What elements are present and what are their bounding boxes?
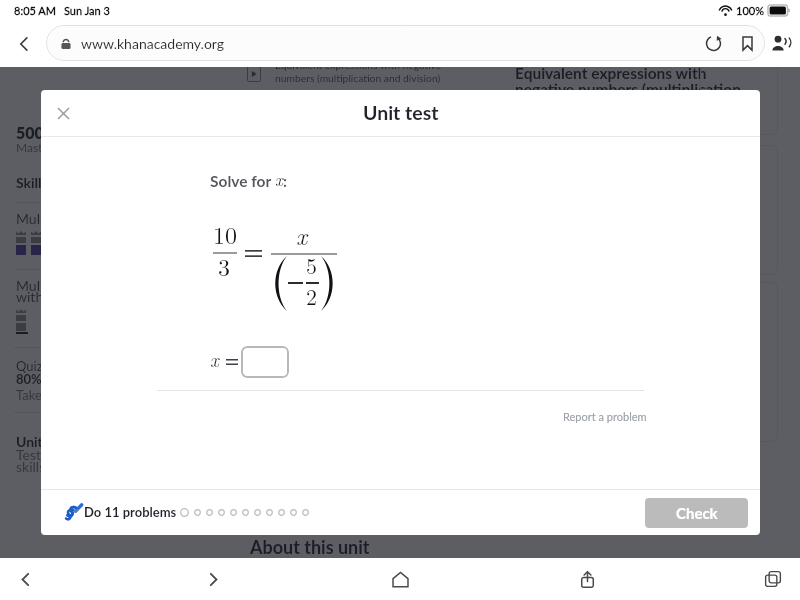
staticText: x — [296, 218, 308, 252]
button[interactable]: Back — [3, 558, 47, 600]
staticText: skills — [16, 458, 46, 475]
button[interactable]: Share page — [763, 27, 797, 61]
button[interactable]: Forward — [191, 558, 235, 600]
staticText: x — [210, 346, 219, 373]
staticText: 3 — [218, 249, 230, 283]
staticText: negative numbers (multiplication — [515, 80, 741, 99]
button[interactable]: Share — [565, 558, 609, 600]
staticText: Sun Jan 3 — [64, 4, 110, 17]
staticText: Mastery points — [16, 140, 95, 154]
staticText: Equivalent expressions with — [515, 67, 707, 83]
button[interactable]: Do 11 problems — [65, 501, 177, 523]
button[interactable]: Tabs — [751, 558, 795, 600]
button[interactable]: Close — [47, 97, 79, 129]
staticText: About this unit — [250, 536, 370, 558]
button[interactable]: Reload — [699, 29, 727, 57]
staticText: 5 — [306, 249, 318, 280]
staticText: 2 — [306, 280, 318, 311]
staticText: Solve for — [210, 172, 275, 191]
staticText: 100% — [736, 4, 764, 17]
staticText: Skill — [16, 174, 42, 191]
staticText: : — [283, 172, 287, 191]
button[interactable]: Back — [4, 24, 44, 64]
staticText: Multiplying — [16, 210, 86, 227]
button[interactable]: Report a problem — [563, 410, 647, 423]
staticText: numbers (multiplication and division) — [275, 72, 441, 84]
staticText: Unit test — [363, 101, 439, 124]
staticText: Quiz 1 — [16, 358, 54, 374]
button[interactable]: www.khanacademy.org — [46, 25, 765, 61]
button[interactable]: Bookmarks — [733, 29, 761, 57]
staticText: 8:05 AM — [14, 4, 56, 17]
staticText: www.khanacademy.org — [81, 35, 225, 52]
staticText: 80% — [16, 371, 45, 387]
button[interactable]: Home — [378, 558, 422, 600]
staticText: x — [275, 167, 283, 191]
staticText: Check — [676, 504, 718, 522]
staticText: with n — [16, 288, 55, 305]
staticText: 500 — [16, 123, 44, 142]
staticText: Take q — [16, 387, 53, 403]
staticText: Do 11 problems — [84, 504, 177, 520]
staticText: 10 — [213, 217, 237, 251]
button[interactable]: Check — [645, 498, 748, 528]
staticText: Unit t — [16, 433, 52, 450]
staticText: Equivalent expressions with negative — [275, 67, 442, 71]
staticText: Test y — [16, 446, 52, 463]
staticText: Multiplying — [16, 277, 86, 294]
button[interactable]: Answer input — [241, 346, 289, 378]
